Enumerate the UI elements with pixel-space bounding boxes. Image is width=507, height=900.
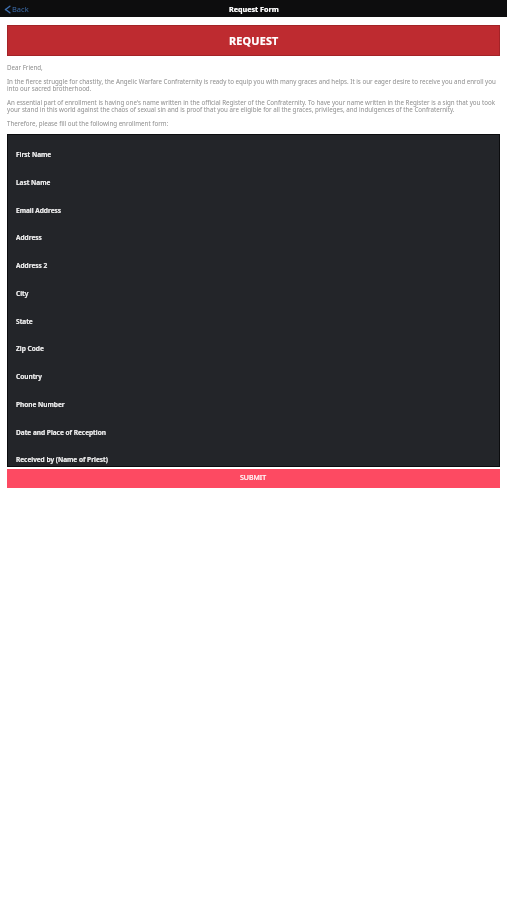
button[interactable]: Email Address [7,190,500,218]
button[interactable]: City [7,273,500,301]
button[interactable]: Back [0,2,35,16]
button[interactable]: First Name [7,134,500,162]
button[interactable]: Received by (Name of Priest) [7,439,500,467]
button[interactable]: Last Name [7,162,500,190]
staticText: Email Address [16,206,62,215]
button[interactable]: Address [7,217,500,245]
staticText: Address [16,233,42,242]
staticText: REQUEST [229,33,279,48]
staticText: An essential part of enrollment is havin… [7,98,500,114]
staticText: State [16,317,33,326]
staticText: Country [16,372,42,381]
staticText: Address 2 [16,261,48,270]
staticText: Received by (Name of Priest) [16,455,108,464]
staticText: Therefore, please fill out the following… [7,119,169,127]
staticText: City [16,289,29,298]
staticText: Back [12,4,29,14]
button[interactable]: SUBMIT [7,469,500,488]
staticText: Last Name [16,178,51,187]
button[interactable]: Phone Number [7,384,500,412]
staticText: Date and Place of Reception [16,428,106,437]
button[interactable]: Date and Place of Reception [7,412,500,440]
button[interactable]: Country [7,356,500,384]
staticText: Request Form [229,4,279,14]
staticText: In the fierce struggle for chastity, the… [7,77,500,93]
button[interactable]: Zip Code [7,328,500,356]
button[interactable]: State [7,301,500,329]
staticText: SUBMIT [240,473,267,483]
staticText: Zip Code [16,344,44,353]
button[interactable]: Address 2 [7,245,500,273]
staticText: First Name [16,150,52,159]
staticText: Dear Friend, [7,63,43,71]
staticText: Phone Number [16,400,65,409]
button[interactable]: REQUEST [7,25,500,56]
